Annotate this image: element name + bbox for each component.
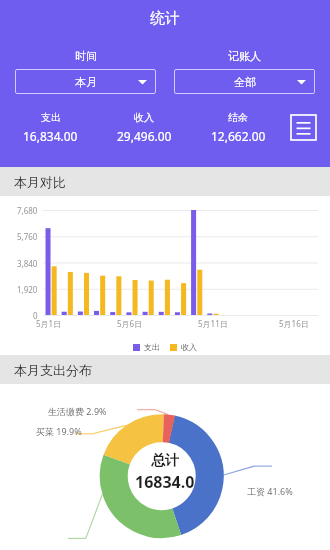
- button[interactable]: More options: [285, 109, 321, 145]
- staticText: 5月16日: [279, 318, 309, 329]
- staticText: 本月对比: [14, 174, 66, 190]
- staticText: 5月6日: [117, 318, 143, 329]
- staticText: 统计: [150, 9, 180, 28]
- staticText: 16834.0: [135, 471, 195, 493]
- staticText: 29,496.00: [117, 128, 172, 144]
- staticText: 支出: [41, 111, 61, 124]
- button[interactable]: 本月: [15, 69, 156, 94]
- staticText: 结余: [228, 111, 248, 124]
- staticText: 16,834.00: [23, 128, 78, 144]
- staticText: 7,680: [17, 205, 38, 216]
- staticText: 买菜 19.9%: [36, 425, 82, 437]
- staticText: 工资 41.6%: [247, 485, 293, 497]
- staticText: 本月: [75, 75, 97, 89]
- staticText: 收入: [181, 342, 197, 352]
- staticText: 时间: [75, 49, 97, 63]
- staticText: 5月1日: [36, 318, 62, 329]
- staticText: 0: [33, 310, 38, 321]
- staticText: 记账人: [228, 49, 261, 63]
- button[interactable]: 全部: [174, 69, 315, 94]
- staticText: 生活缴费 2.9%: [48, 405, 107, 417]
- staticText: 1,920: [17, 284, 38, 295]
- staticText: 收入: [134, 111, 154, 124]
- staticText: 全部: [234, 75, 256, 89]
- staticText: 支出: [144, 342, 160, 352]
- staticText: 12,662.00: [211, 128, 266, 144]
- staticText: 总计: [151, 452, 179, 470]
- staticText: 3,840: [17, 258, 38, 269]
- staticText: 5,760: [17, 231, 38, 242]
- staticText: 本月支出分布: [14, 362, 92, 378]
- staticText: 5月11日: [198, 318, 228, 329]
